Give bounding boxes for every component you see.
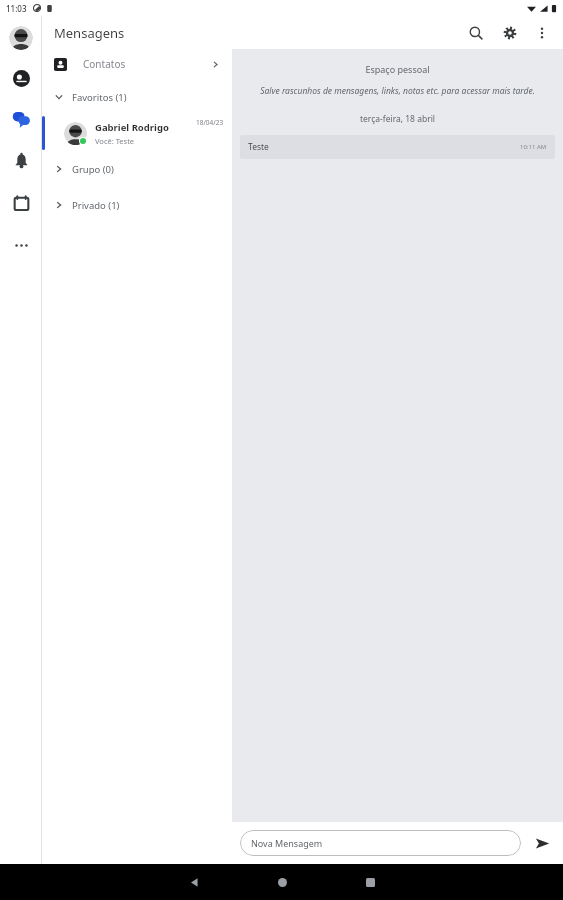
staticText: Nova Mensagem: [251, 837, 323, 849]
button[interactable]: Pesquisar: [463, 20, 489, 46]
button[interactable]: Enviar: [529, 830, 555, 856]
button[interactable]: Mensagens: [8, 106, 34, 132]
button[interactable]: Configurações: [497, 20, 523, 46]
button[interactable]: Atividade: [8, 65, 34, 91]
staticText: 18/04/23: [196, 118, 224, 127]
button[interactable]: Calendário: [8, 190, 34, 216]
button[interactable]: Favoritos (1): [42, 79, 230, 115]
staticText: Gabriel Rodrigo: [95, 121, 169, 134]
staticText: 11:03: [6, 3, 27, 14]
staticText: Grupo (0): [72, 163, 114, 176]
button[interactable]: Voltar: [171, 864, 217, 900]
button[interactable]: Notificações: [8, 148, 34, 174]
staticText: Mensagens: [54, 24, 125, 42]
staticText: Contatos: [83, 57, 126, 71]
staticText: Favoritos (1): [72, 91, 127, 104]
staticText: Teste: [248, 141, 269, 153]
button[interactable]: Nova Mensagem: [240, 830, 521, 856]
staticText: Privado (1): [72, 199, 120, 212]
button[interactable]: Contatos: [42, 49, 230, 79]
staticText: Você: Teste: [95, 136, 135, 146]
button[interactable]: Grupo (0): [42, 151, 230, 187]
staticText: Salve rascunhos de mensagens, links, not…: [238, 85, 557, 97]
button[interactable]: Teste: [240, 135, 555, 159]
button[interactable]: Recentes: [347, 864, 393, 900]
button[interactable]: Mais opções: [529, 20, 555, 46]
button[interactable]: Gabriel Rodrigo: [42, 115, 230, 151]
staticText: terça-feira, 18 abril: [232, 113, 563, 125]
button[interactable]: Início: [259, 864, 305, 900]
staticText: Espaço pessoal: [232, 63, 563, 75]
button[interactable]: Privado (1): [42, 187, 230, 223]
button[interactable]: Mais: [8, 232, 34, 258]
button[interactable]: Perfil: [9, 26, 33, 50]
staticText: 10:11 AM: [520, 143, 547, 151]
